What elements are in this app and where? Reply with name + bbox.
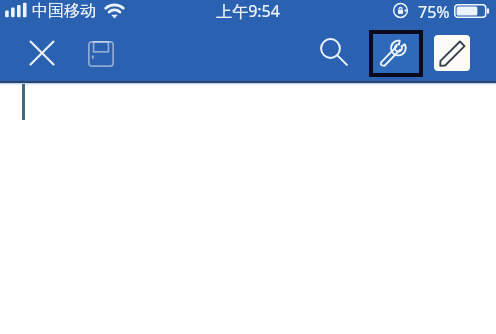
button[interactable]: Save bbox=[77, 30, 125, 78]
button[interactable]: Search bbox=[310, 28, 358, 76]
button[interactable]: Tools bbox=[373, 34, 419, 73]
staticText: 75% bbox=[418, 1, 450, 23]
staticText: 上午9:54 bbox=[0, 0, 496, 22]
button[interactable]: Close bbox=[18, 29, 66, 77]
button[interactable]: Edit bbox=[434, 35, 470, 71]
staticText: 中国移动 bbox=[32, 1, 96, 21]
